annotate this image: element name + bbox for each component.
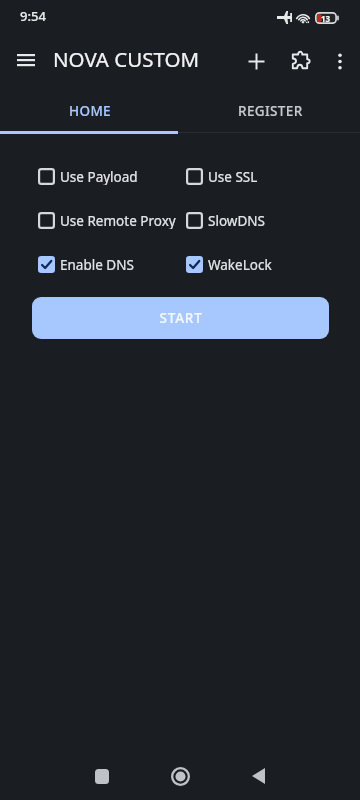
staticText: Use SSL: [208, 168, 258, 185]
button[interactable]: Extensions: [278, 39, 322, 83]
staticText: 13: [321, 13, 331, 24]
staticText: HOME: [69, 102, 111, 120]
button[interactable]: More options: [320, 41, 360, 81]
button[interactable]: Back: [234, 752, 282, 800]
staticText: Use Remote Proxy: [60, 212, 176, 229]
staticText: 9:54: [20, 7, 46, 25]
button[interactable]: Use Payload: [38, 168, 138, 185]
button[interactable]: Menu: [5, 39, 47, 81]
staticText: Use Payload: [60, 168, 138, 185]
button[interactable]: Home: [156, 752, 204, 800]
staticText: WakeLock: [208, 256, 272, 273]
button[interactable]: REGISTER: [180, 88, 360, 134]
button[interactable]: Use Remote Proxy: [38, 212, 176, 229]
staticText: SlowDNS: [208, 212, 265, 229]
button[interactable]: HOME: [0, 88, 180, 134]
button[interactable]: START: [32, 297, 329, 339]
button[interactable]: WakeLock: [186, 256, 272, 273]
button[interactable]: Add: [234, 39, 278, 83]
staticText: START: [159, 309, 203, 327]
button[interactable]: Use SSL: [186, 168, 258, 185]
button[interactable]: SlowDNS: [186, 212, 265, 229]
staticText: NOVA CUSTOM: [53, 45, 200, 73]
staticText: REGISTER: [238, 102, 303, 120]
button[interactable]: Enable DNS: [38, 256, 134, 273]
staticText: Enable DNS: [60, 256, 134, 273]
button[interactable]: Recents: [78, 752, 126, 800]
